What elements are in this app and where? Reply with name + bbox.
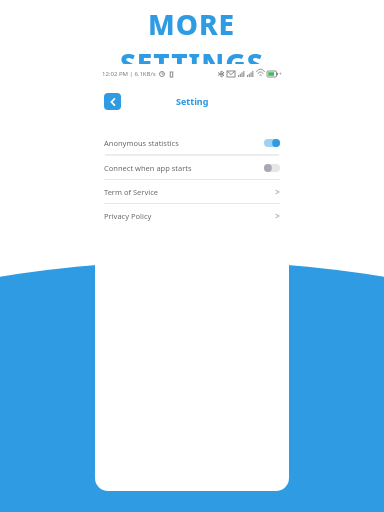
staticText: MORE	[148, 5, 236, 43]
staticText: Term of Service	[104, 187, 159, 197]
staticText: Setting	[176, 95, 209, 107]
button[interactable]: Privacy Policy	[95, 204, 289, 227]
button[interactable]: Term of Service	[95, 180, 289, 203]
staticText: 12:02 PM | 6.1KB/s	[102, 70, 156, 78]
staticText: Anonymous statistics	[104, 138, 179, 148]
button[interactable]: Back	[104, 93, 121, 110]
button[interactable]: Connect when app starts	[95, 156, 289, 179]
staticText: +	[279, 71, 282, 78]
staticText: SETTINGS	[120, 44, 264, 82]
staticText: Connect when app starts	[104, 163, 192, 173]
button[interactable]: Anonymous statistics	[95, 131, 289, 154]
staticText: Privacy Policy	[104, 211, 152, 221]
